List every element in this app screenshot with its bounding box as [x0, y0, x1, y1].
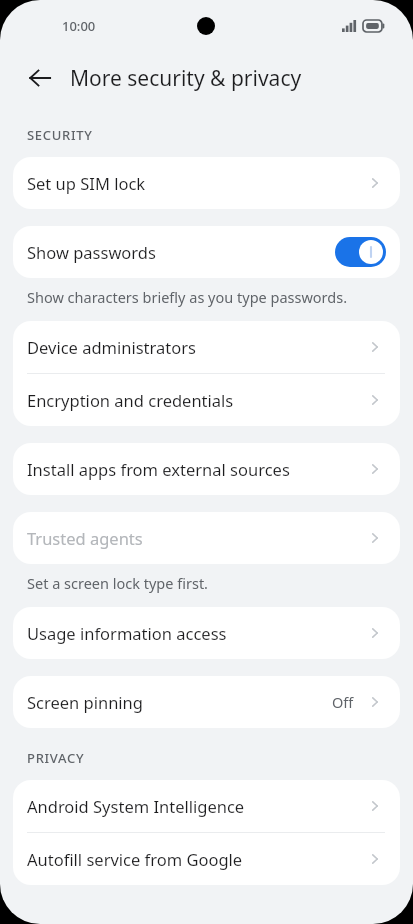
staticText: Show passwords: [27, 241, 335, 263]
button[interactable]: Install apps from external sources: [13, 443, 400, 495]
staticText: SECURITY: [27, 126, 93, 144]
staticText: More security & privacy: [70, 64, 302, 93]
staticText: 10:00: [62, 17, 96, 35]
staticText: Set up SIM lock: [27, 172, 362, 194]
staticText: Set a screen lock type first.: [27, 573, 209, 593]
staticText: Show characters briefly as you type pass…: [27, 287, 348, 307]
button[interactable]: Autofill service from Google: [13, 833, 400, 885]
staticText: Android System Intelligence: [27, 795, 362, 817]
staticText: Encryption and credentials: [27, 389, 362, 411]
staticText: Autofill service from Google: [27, 848, 362, 870]
button[interactable]: Trusted agents: [13, 512, 400, 564]
button[interactable]: Encryption and credentials: [13, 374, 400, 426]
button[interactable]: Back: [18, 56, 62, 100]
staticText: Trusted agents: [27, 527, 362, 549]
staticText: Screen pinning: [27, 691, 332, 713]
staticText: Off: [332, 692, 354, 712]
staticText: Install apps from external sources: [27, 458, 362, 480]
staticText: Usage information access: [27, 622, 362, 644]
button[interactable]: Usage information access: [13, 607, 400, 659]
button[interactable]: Android System Intelligence: [13, 780, 400, 832]
button[interactable]: Show passwords: [13, 226, 400, 278]
button[interactable]: Set up SIM lock: [13, 157, 400, 209]
staticText: PRIVACY: [27, 749, 85, 767]
button[interactable]: Screen pinning: [13, 676, 400, 728]
button[interactable]: Device administrators: [13, 321, 400, 373]
staticText: Device administrators: [27, 336, 362, 358]
